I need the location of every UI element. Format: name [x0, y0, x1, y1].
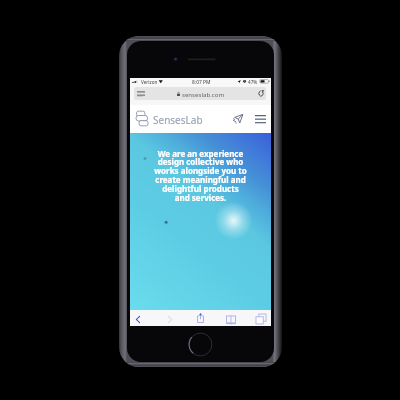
button[interactable]: Share — [197, 313, 204, 323]
staticText: We are an experience design collective w… — [130, 148, 271, 203]
staticText: Verizon — [141, 79, 158, 85]
staticText: senseslab.com — [182, 90, 225, 98]
staticText: 47% — [248, 79, 258, 85]
button[interactable]: Tabs — [256, 314, 266, 324]
button[interactable]: Menu — [255, 115, 266, 123]
staticText: 8:07 PM — [192, 79, 211, 86]
button[interactable]: Send — [233, 114, 243, 123]
button[interactable]: Bookmarks — [226, 315, 236, 324]
button[interactable]: Reader view — [137, 91, 145, 97]
button[interactable]: Back — [136, 316, 140, 323]
button[interactable] — [134, 87, 266, 100]
button[interactable]: Forward — [168, 316, 172, 323]
button[interactable]: Reload — [258, 90, 264, 97]
staticText: SensesLab — [153, 113, 203, 127]
